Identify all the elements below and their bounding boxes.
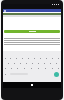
button[interactable] <box>4 30 60 33</box>
button[interactable]: Navigate up <box>3 9 61 12</box>
button[interactable]: Enter <box>54 72 59 77</box>
